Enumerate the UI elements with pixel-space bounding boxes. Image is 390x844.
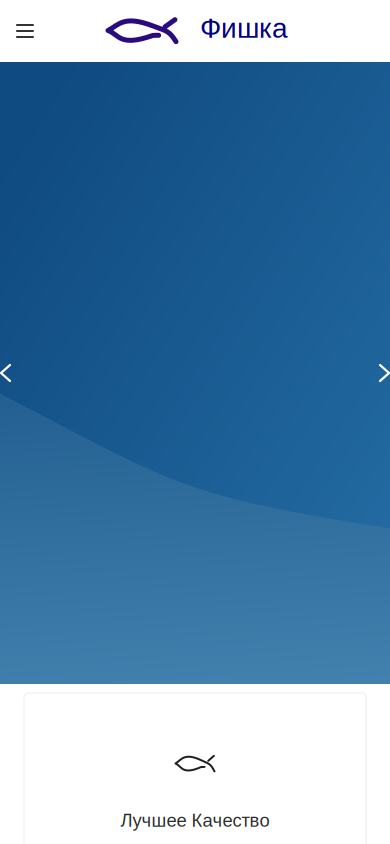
button[interactable]: Previous slide xyxy=(1,351,24,395)
staticText: Фишка xyxy=(200,12,288,44)
staticText: Лучшее Качество xyxy=(120,810,269,831)
button[interactable]: Next slide xyxy=(366,351,389,395)
button[interactable]: Menu xyxy=(0,0,50,62)
